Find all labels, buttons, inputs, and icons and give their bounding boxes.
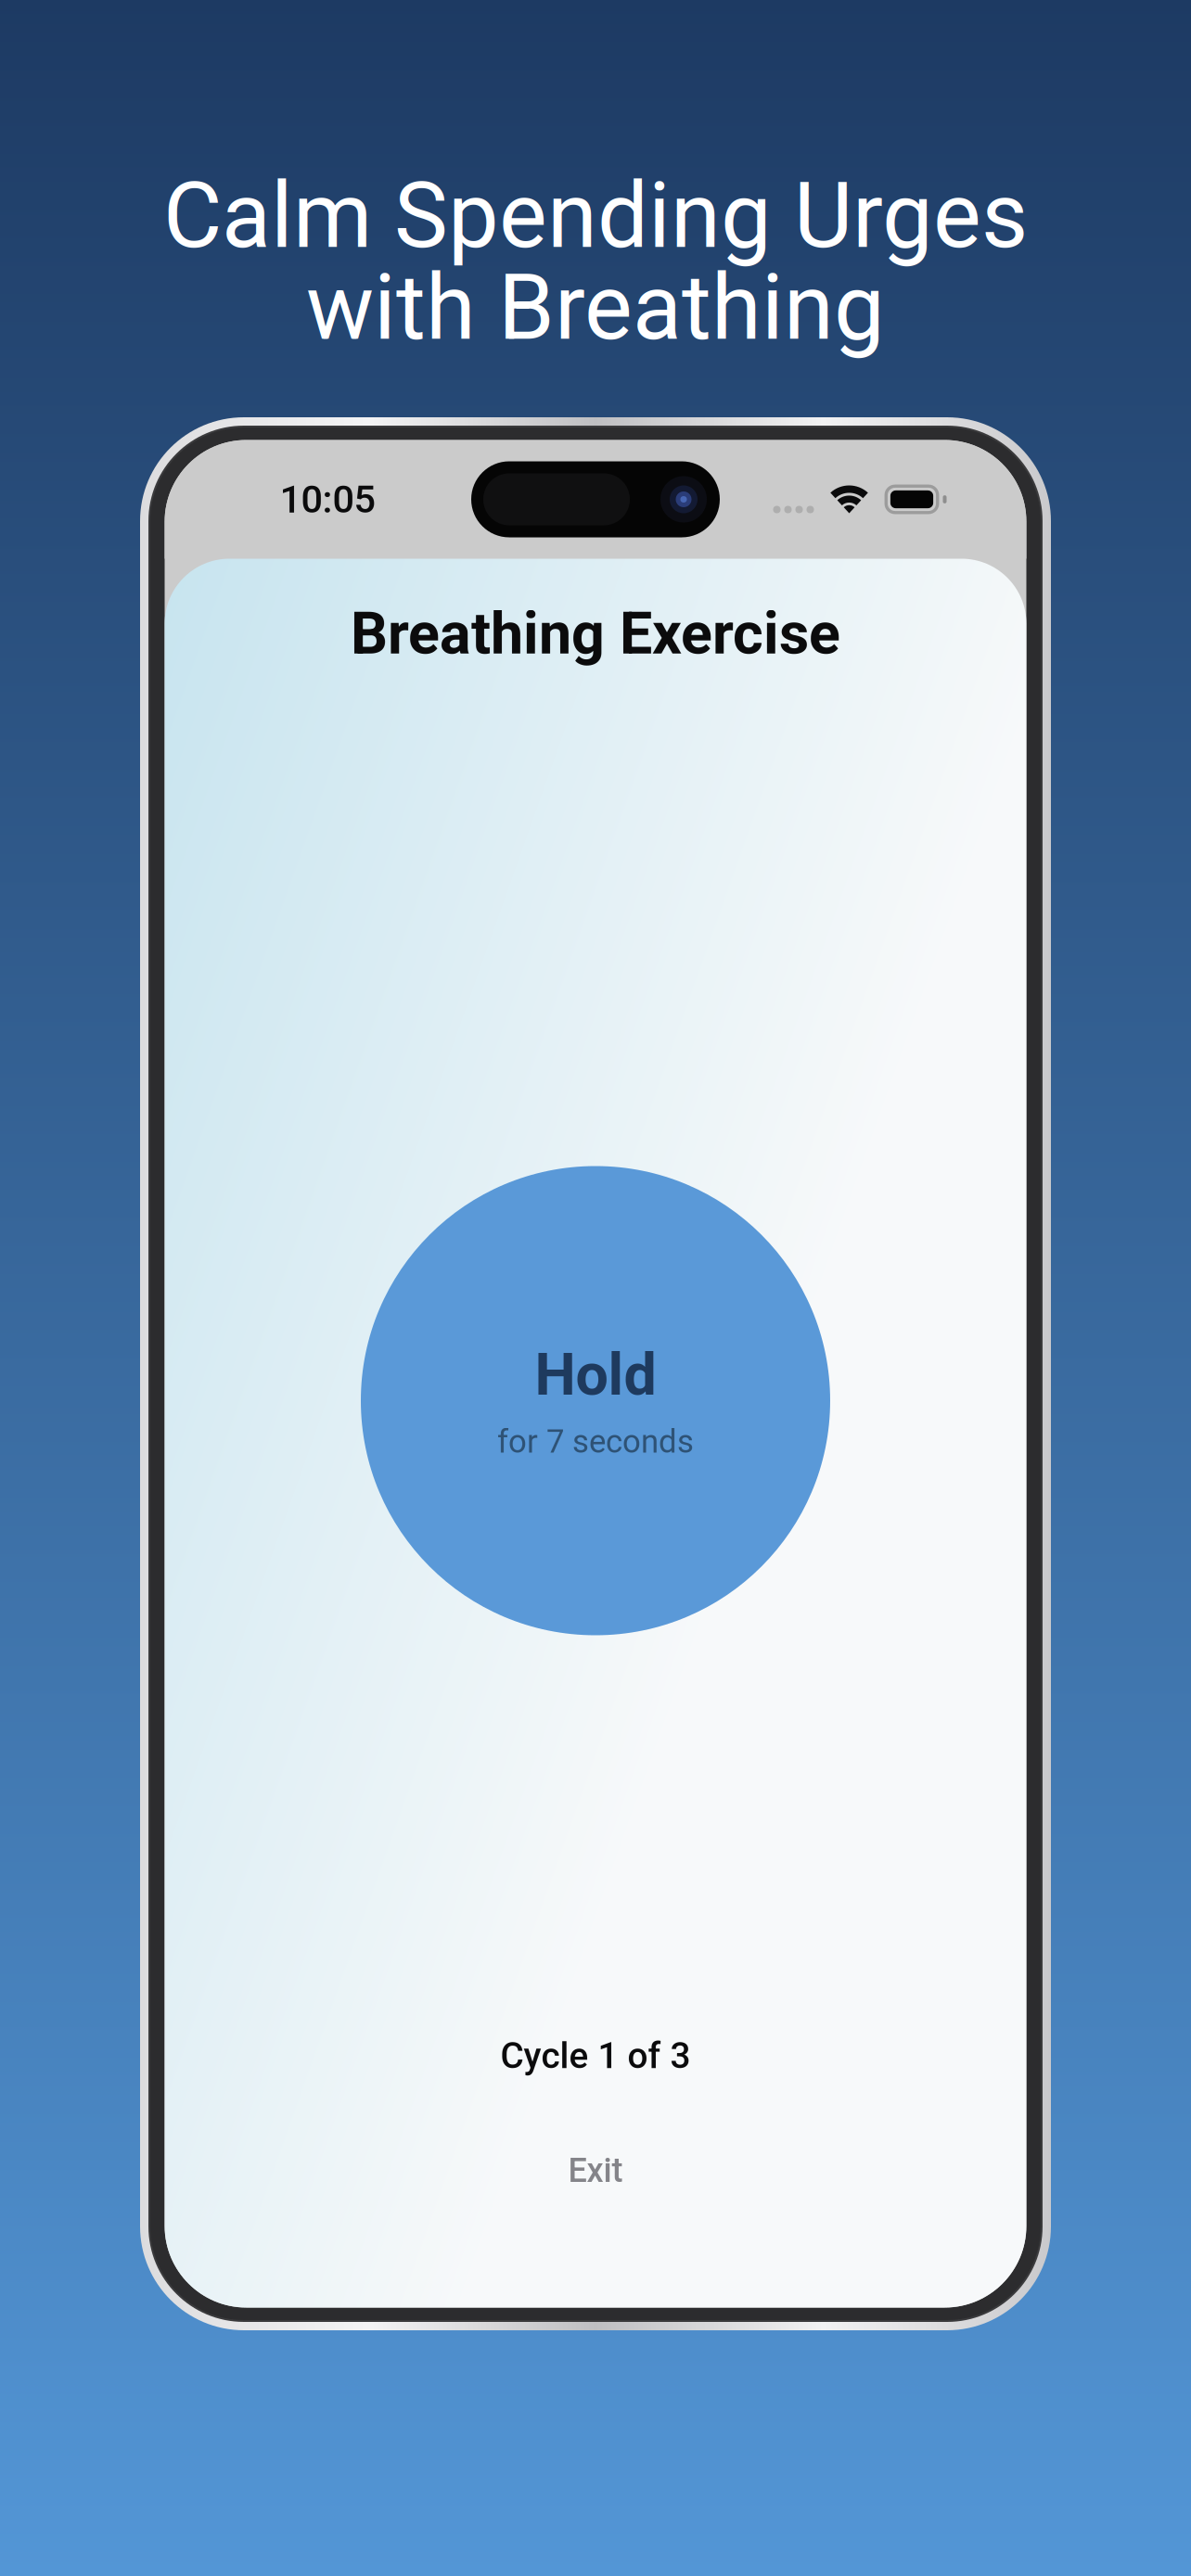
button[interactable]: Exit: [165, 2130, 1026, 2210]
staticText: Exit: [568, 2151, 623, 2190]
staticText: 10:05: [280, 477, 375, 522]
staticText: Breathing Exercise: [351, 599, 840, 668]
staticText: Hold: [535, 1341, 656, 1409]
staticText: Calm Spending Urges: [163, 163, 1028, 269]
staticText: Cycle 1 of 3: [500, 2035, 691, 2077]
staticText: for 7 seconds: [497, 1423, 694, 1460]
staticText: with Breathing: [306, 255, 885, 361]
